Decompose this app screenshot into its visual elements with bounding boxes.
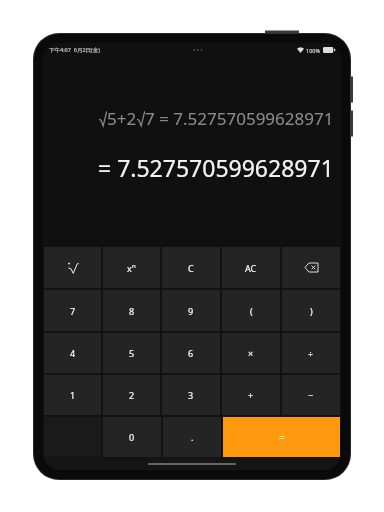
button[interactable]: 1 [44,375,101,415]
button[interactable]: 0 [103,417,161,457]
button[interactable]: ( [222,290,280,331]
staticText: − [308,389,314,401]
staticText: 7 [70,305,76,317]
button[interactable]: . [163,417,221,457]
staticText: 0 [129,431,135,443]
button[interactable]: C [162,247,220,288]
button[interactable]: ÷ [282,333,340,373]
staticText: 9 [188,305,194,317]
staticText: 100% [306,47,321,54]
button[interactable]: 8 [103,290,160,331]
button[interactable]: 5 [103,333,160,373]
staticText: C [188,262,194,274]
staticText: 1 [70,389,76,401]
button[interactable]: × [222,333,280,373]
staticText: × [248,347,254,359]
staticText: 6 [188,347,194,359]
staticText: 8 [129,305,135,317]
button[interactable]: + [222,375,280,415]
button[interactable]: 7 [44,290,101,331]
button[interactable]: 3 [162,375,220,415]
staticText: x [127,262,132,274]
button[interactable]: AC [222,247,280,288]
staticText: = 7.527570599628971 [98,152,334,183]
button[interactable]: Backspace [282,247,340,288]
staticText: 5 [129,347,135,359]
button[interactable]: 6 [162,333,220,373]
button[interactable]: 9 [162,290,220,331]
button[interactable]: 4 [44,333,101,373]
staticText: 5+2 [107,107,137,130]
staticText: ) [310,305,313,317]
staticText: n [132,262,136,270]
staticText: = [279,430,285,444]
staticText: 4 [70,347,76,359]
staticText: 2 [129,389,135,401]
staticText: ÷ [308,347,314,359]
button[interactable]: = [223,417,340,457]
button[interactable]: 2 [103,375,160,415]
staticText: . [191,431,194,443]
staticText: + [248,389,254,401]
staticText: 下午4:07 6月2日(金) [49,46,100,54]
button[interactable]: − [282,375,340,415]
staticText: ( [250,305,253,317]
button[interactable]: nth root [44,247,101,288]
button[interactable]: power [103,247,160,288]
staticText: 3 [188,389,194,401]
staticText: AC [245,262,257,274]
button[interactable]: ) [282,290,340,331]
staticText: 7 = 7.527570599628971 [145,107,334,130]
